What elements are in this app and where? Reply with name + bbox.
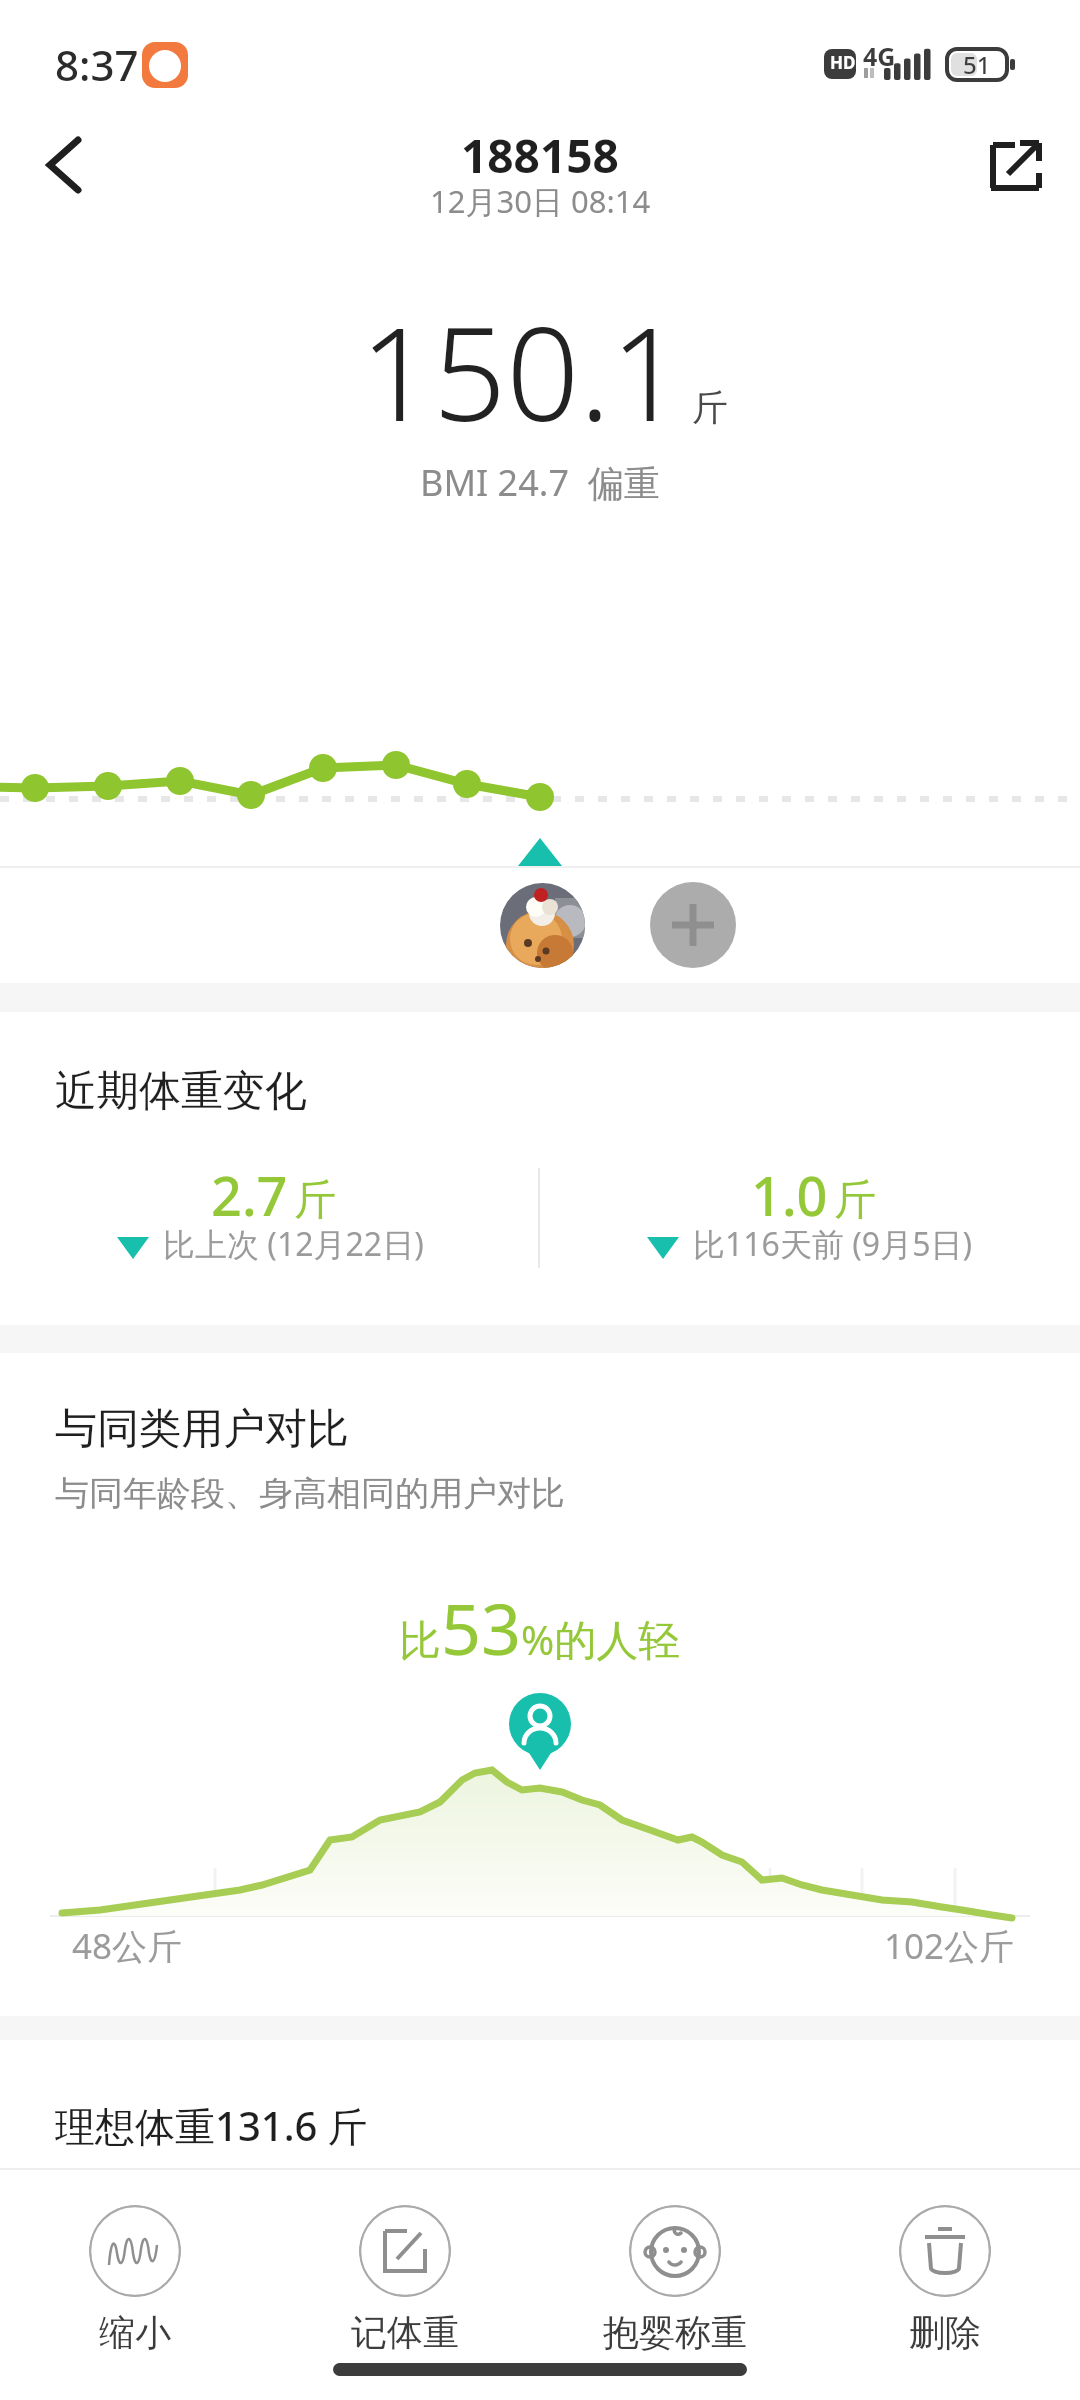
staticText: 8:37 <box>55 36 139 93</box>
staticText: 斤 <box>834 1174 876 1227</box>
staticText: 记体重 <box>351 2310 459 2355</box>
button[interactable] <box>30 130 100 200</box>
button[interactable]: 缩小 <box>35 2195 235 2360</box>
staticText: 150.1 <box>360 284 684 458</box>
staticText: 1.0 <box>751 1158 828 1232</box>
staticText: 4G <box>863 39 896 73</box>
staticText: 抱婴称重 <box>603 2310 747 2355</box>
staticText: 删除 <box>909 2310 981 2355</box>
staticText: 与同类用户对比 <box>55 1403 349 1456</box>
button[interactable]: 删除 <box>845 2195 1045 2360</box>
button[interactable] <box>500 883 585 968</box>
staticText: 近期体重变化 <box>55 1065 307 1118</box>
button[interactable]: 记体重 <box>305 2195 505 2360</box>
staticText: 与同年龄段、身高相同的用户对比 <box>55 1472 565 1515</box>
staticText: 51 <box>963 48 991 81</box>
staticText: 缩小 <box>99 2310 171 2355</box>
staticText: HD <box>830 51 856 74</box>
staticText: 188158 <box>461 124 619 187</box>
staticText: 斤 <box>692 385 728 430</box>
staticText: 比116天前 (9月5日) <box>693 1222 973 1266</box>
staticText: 斤 <box>294 1174 336 1227</box>
staticText: 102公斤 <box>884 1922 1015 1970</box>
button[interactable] <box>650 882 736 968</box>
button[interactable] <box>975 128 1051 204</box>
button[interactable]: 抱婴称重 <box>575 2195 775 2360</box>
staticText: 理想体重131.6 斤 <box>55 2098 368 2153</box>
staticText: BMI 24.7 偏重 <box>420 458 660 507</box>
staticText: 比53%的人轻 <box>399 1580 681 1675</box>
staticText: 48公斤 <box>72 1922 183 1970</box>
staticText: 12月30日 08:14 <box>430 180 651 222</box>
staticText: 2.7 <box>211 1158 288 1232</box>
staticText: 比上次 (12月22日) <box>163 1222 424 1266</box>
